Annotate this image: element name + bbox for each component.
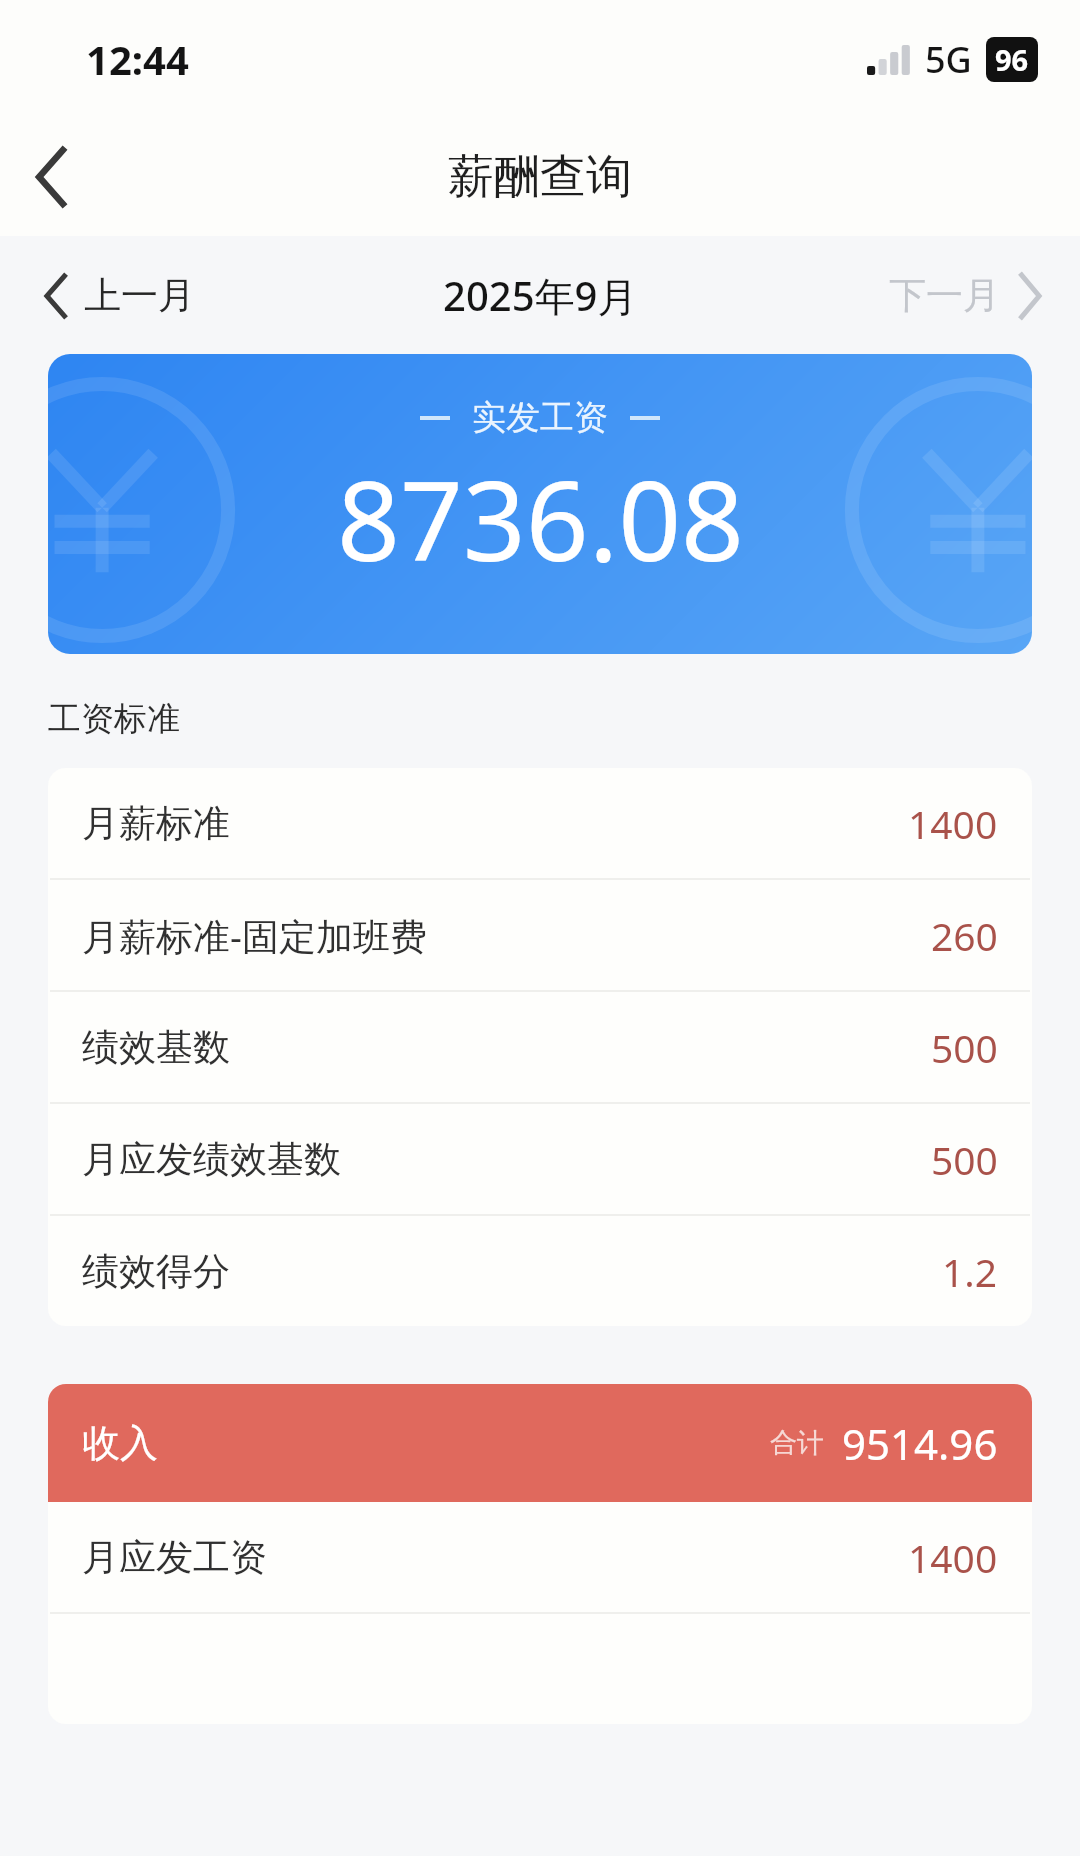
staticText: 8736.08 (337, 443, 744, 593)
staticText: 1.2 (942, 1245, 998, 1298)
staticText: 工资标准 (48, 698, 180, 740)
button[interactable]: 绩效基数 (48, 992, 1032, 1102)
staticText: 96 (995, 40, 1029, 79)
staticText: 5G (925, 35, 972, 84)
staticText: 上一月 (84, 272, 195, 319)
staticText: 12:44 (86, 32, 189, 86)
button[interactable]: Back (0, 125, 104, 229)
staticText: 500 (931, 1133, 998, 1186)
button[interactable]: 月薪标准-固定加班费 (48, 880, 1032, 990)
staticText: 下一月 (889, 272, 1000, 319)
staticText: 合计 (770, 1426, 824, 1460)
staticText: 500 (931, 1021, 998, 1074)
staticText: 绩效基数 (82, 1024, 230, 1071)
staticText: 月薪标准-固定加班费 (82, 910, 427, 961)
button[interactable]: 收入 (48, 1384, 1032, 1502)
staticText: 绩效得分 (82, 1248, 230, 1295)
button[interactable]: 下一月 (873, 258, 1080, 333)
button[interactable]: 实发工资 (48, 354, 1032, 654)
staticText: 月应发绩效基数 (82, 1136, 341, 1183)
staticText: 月薪标准 (82, 800, 230, 847)
button[interactable]: 月应发绩效基数 (48, 1104, 1032, 1214)
button[interactable]: 月薪标准 (48, 768, 1032, 878)
staticText: 260 (931, 909, 998, 962)
staticText: 月应发工资 (82, 1534, 267, 1581)
staticText: 收入 (82, 1419, 158, 1467)
staticText: 1400 (908, 1531, 998, 1584)
staticText: 1400 (908, 797, 998, 850)
button[interactable]: 月应发工资 (48, 1502, 1032, 1612)
staticText: 实发工资 (472, 396, 608, 439)
button[interactable]: 上一月 (0, 258, 211, 333)
staticText: 9514.96 (842, 1415, 998, 1472)
staticText: 2025年9月 (443, 268, 638, 323)
staticText: 薪酬查询 (448, 148, 632, 206)
button[interactable]: 绩效得分 (48, 1216, 1032, 1326)
